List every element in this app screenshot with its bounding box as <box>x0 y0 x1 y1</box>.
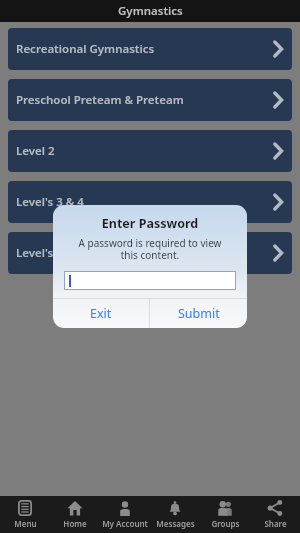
button[interactable]: Home <box>50 496 100 533</box>
button[interactable]: Preschool Preteam & Preteam <box>8 79 292 121</box>
staticText: Level 2 <box>16 143 55 159</box>
staticText: Preschool Preteam & Preteam <box>16 92 184 108</box>
staticText: Submit <box>178 305 220 322</box>
button[interactable] <box>65 272 235 289</box>
button[interactable]: Menu <box>0 496 50 533</box>
staticText: Gymnastics <box>118 3 183 19</box>
button[interactable]: Exit <box>53 299 149 328</box>
staticText: Home <box>63 518 87 529</box>
staticText: Share <box>264 518 287 529</box>
button[interactable]: Recreational Gymnastics <box>8 28 292 70</box>
button[interactable]: Submit <box>150 299 247 328</box>
staticText: Messages <box>156 518 195 529</box>
button[interactable]: Level 2 <box>8 130 292 172</box>
button[interactable]: Messages <box>150 496 200 533</box>
button[interactable]: My Account <box>100 496 150 533</box>
staticText: Menu <box>14 518 37 529</box>
staticText: Recreational Gymnastics <box>16 41 155 57</box>
staticText: Enter Password <box>53 215 247 232</box>
button[interactable]: Share <box>250 496 300 533</box>
staticText: Exit <box>90 305 112 322</box>
button[interactable]: Level's 3 & 4 <box>8 181 292 223</box>
button[interactable]: Groups <box>200 496 250 533</box>
staticText: Level's 3 & 4 <box>16 194 84 210</box>
button[interactable]: Level's 5 & 6 <box>8 232 292 274</box>
staticText: Level's 5 & 6 <box>16 245 84 261</box>
staticText: Groups <box>211 518 240 529</box>
staticText: My Account <box>102 518 148 529</box>
staticText: A password is required to view this cont… <box>73 236 227 262</box>
